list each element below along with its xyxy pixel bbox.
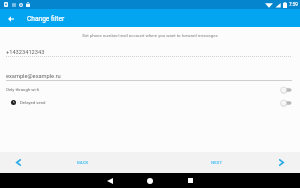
staticText: NEXT xyxy=(211,160,223,165)
staticText: 7:59 xyxy=(289,2,298,7)
staticText: example@example.ru xyxy=(6,73,61,80)
staticText: Change filter xyxy=(27,15,65,23)
staticText: Set phone number/mail account where you … xyxy=(0,33,300,38)
button[interactable]: NEXT xyxy=(150,152,300,173)
button[interactable]: Only through wi-fi xyxy=(0,83,300,96)
button[interactable]: Home xyxy=(139,173,159,188)
button[interactable]: Back xyxy=(100,173,120,188)
staticText: BACK xyxy=(77,160,89,165)
button[interactable]: Back xyxy=(0,9,22,27)
staticText: Delayed send xyxy=(20,100,46,105)
staticText: Only through wi-fi xyxy=(6,87,40,92)
button[interactable]: Recents xyxy=(180,173,200,188)
button[interactable]: BACK xyxy=(0,152,150,173)
button[interactable]: Delayed send xyxy=(0,96,300,109)
staticText: +14323412343 xyxy=(6,49,45,56)
